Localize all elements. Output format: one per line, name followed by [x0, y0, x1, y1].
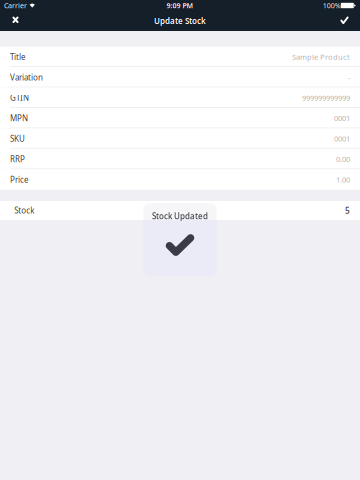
staticText: Price [10, 174, 29, 185]
staticText: 0001 [334, 113, 350, 123]
staticText: 100% [323, 1, 341, 10]
staticText: GTIN [10, 92, 29, 103]
staticText: Title [10, 51, 26, 62]
staticText: 999999999999 [302, 93, 350, 103]
staticText: Stock Updated [152, 211, 208, 222]
staticText: MPN [10, 113, 28, 124]
staticText: - [348, 72, 350, 82]
staticText: Sample Product [292, 52, 350, 62]
staticText: Carrier [4, 1, 27, 10]
staticText: Update Stock [154, 16, 206, 26]
staticText: 1.00 [336, 174, 350, 185]
staticText: 0001 [334, 134, 350, 144]
staticText: Stock [14, 205, 34, 216]
staticText: 9:09 PM [166, 1, 193, 10]
staticText: 5 [345, 205, 350, 216]
button[interactable]: Close [3, 11, 28, 31]
staticText: SKU [10, 133, 25, 144]
staticText: Variation [10, 72, 43, 83]
staticText: 0.00 [336, 154, 350, 164]
staticText: RRP [10, 154, 25, 165]
button[interactable]: Save [332, 11, 357, 31]
